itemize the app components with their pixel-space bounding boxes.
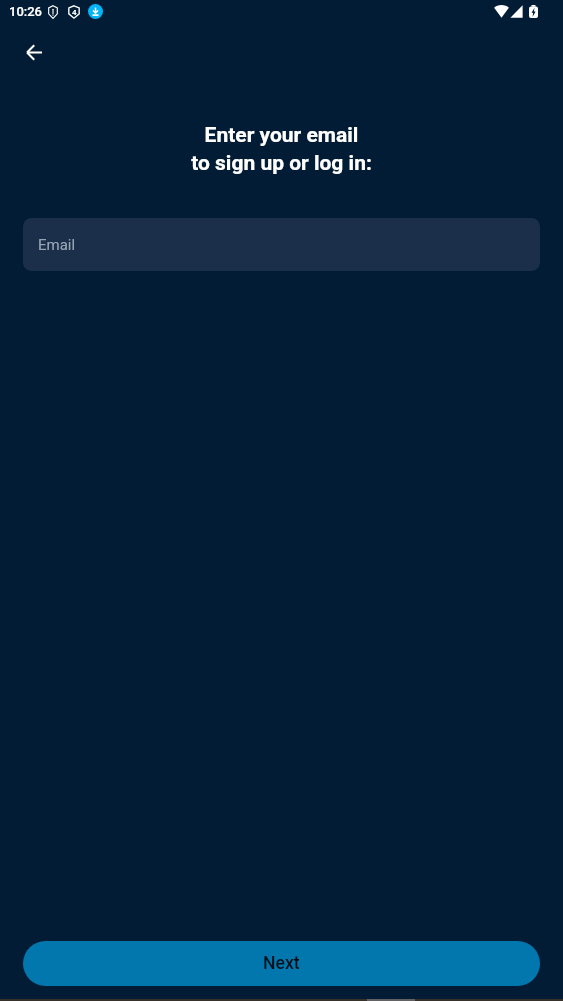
staticText: Next bbox=[263, 953, 300, 974]
staticText: 4 bbox=[72, 8, 77, 17]
staticText: 10:26 bbox=[9, 4, 42, 19]
button[interactable]: Back bbox=[10, 28, 58, 76]
button[interactable]: Email bbox=[23, 218, 540, 271]
staticText: Email bbox=[38, 236, 76, 254]
staticText: Enter your email to sign up or log in: bbox=[0, 123, 563, 175]
button[interactable]: Next bbox=[23, 941, 540, 986]
